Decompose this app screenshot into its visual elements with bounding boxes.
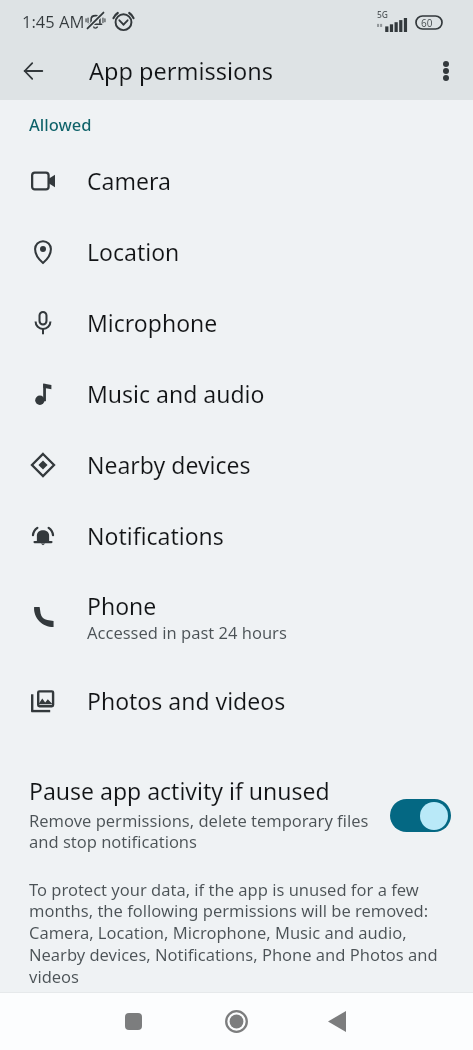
staticText: To protect your data, if the app is unus… [29,878,445,988]
staticText: Camera [87,165,171,196]
staticText: Remove permissions, delete temporary fil… [29,809,369,853]
staticText: Microphone [87,307,218,338]
staticText: Accessed in past 24 hours [87,621,287,643]
button[interactable]: Camera [0,145,473,216]
button[interactable]: Location [0,216,473,287]
button[interactable]: Home [208,993,264,1049]
button[interactable]: Phone [0,581,473,652]
button[interactable]: Back [10,48,56,94]
button[interactable]: Music and audio [0,358,473,429]
button[interactable]: Photos and videos [0,665,473,736]
staticText: 5G [377,9,389,21]
staticText: App permissions [89,55,274,87]
staticText: Location [87,236,180,267]
staticText: 60 [421,16,433,30]
button[interactable]: Recent apps [105,993,161,1049]
staticText: Phone [87,590,157,621]
button[interactable]: Notifications [0,500,473,571]
staticText: Nearby devices [87,449,251,480]
staticText: Notifications [87,520,224,551]
button[interactable]: Pause app activity if unused [0,765,473,861]
button[interactable]: Back [309,993,365,1049]
button[interactable]: Microphone [0,287,473,358]
staticText: Allowed [29,113,92,135]
button[interactable]: Nearby devices [0,429,473,500]
staticText: 1:45 AM [22,10,85,32]
staticText: Photos and videos [87,685,286,716]
button[interactable]: More options [424,49,468,93]
staticText: Pause app activity if unused [29,775,330,806]
staticText: Music and audio [87,378,265,409]
button[interactable]: Pause app activity toggle [390,799,451,832]
